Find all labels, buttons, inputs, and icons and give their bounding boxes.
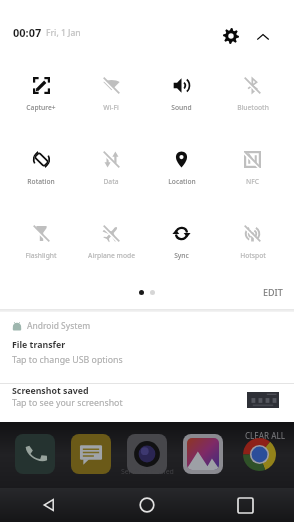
staticText: Hotspot bbox=[240, 251, 266, 260]
button[interactable]: Rotation bbox=[6, 132, 76, 206]
staticText: EDIT bbox=[263, 286, 283, 298]
button[interactable]: Capture+ bbox=[6, 58, 76, 132]
staticText: Wi-Fi bbox=[103, 103, 119, 112]
button[interactable]: Bluetooth bbox=[217, 58, 288, 132]
button[interactable]: Home bbox=[98, 488, 196, 522]
button[interactable]: Sync bbox=[146, 206, 217, 280]
button[interactable]: Recents bbox=[196, 488, 294, 522]
button[interactable]: Screenshot saved bbox=[0, 384, 294, 422]
button[interactable]: Chrome bbox=[239, 434, 279, 474]
button[interactable]: Flashlight bbox=[6, 206, 76, 280]
button[interactable]: Messages bbox=[71, 434, 111, 474]
button[interactable]: Wi-Fi bbox=[76, 58, 146, 132]
staticText: Tap to change USB options bbox=[12, 354, 123, 366]
button[interactable]: Phone bbox=[15, 434, 55, 474]
button[interactable]: Camera bbox=[127, 434, 167, 474]
staticText: Service disabled bbox=[121, 467, 174, 477]
button[interactable]: Collapse bbox=[249, 22, 277, 50]
staticText: CLEAR ALL bbox=[245, 430, 285, 441]
staticText: Airplane mode bbox=[88, 251, 135, 260]
staticText: File transfer bbox=[12, 339, 66, 351]
staticText: Location bbox=[168, 177, 196, 186]
staticText: Data bbox=[103, 177, 119, 186]
button[interactable]: NFC bbox=[217, 132, 288, 206]
staticText: Screenshot saved bbox=[12, 385, 89, 397]
staticText: Sync bbox=[174, 251, 189, 260]
staticText: Tap to see your screenshot bbox=[12, 397, 123, 409]
staticText: 00:07 bbox=[13, 25, 42, 40]
staticText: NFC bbox=[246, 177, 259, 186]
staticText: Bluetooth bbox=[237, 103, 269, 112]
button[interactable]: Sound bbox=[146, 58, 217, 132]
staticText: Rotation bbox=[27, 177, 55, 186]
staticText: Capture+ bbox=[26, 103, 56, 112]
staticText: Android System bbox=[27, 320, 91, 331]
button[interactable]: Airplane mode bbox=[76, 206, 146, 280]
staticText: Sound bbox=[171, 103, 192, 112]
button[interactable]: Hotspot bbox=[217, 206, 288, 280]
staticText: Flashlight bbox=[25, 251, 57, 260]
button[interactable]: Data bbox=[76, 132, 146, 206]
button[interactable]: Gallery bbox=[183, 434, 223, 474]
button[interactable]: Back bbox=[0, 488, 98, 522]
button[interactable]: Android System bbox=[0, 312, 294, 386]
button[interactable]: EDIT bbox=[252, 282, 294, 302]
button[interactable]: Settings bbox=[217, 22, 245, 50]
button[interactable]: Location bbox=[146, 132, 217, 206]
staticText: Fri, 1 Jan bbox=[46, 27, 81, 39]
